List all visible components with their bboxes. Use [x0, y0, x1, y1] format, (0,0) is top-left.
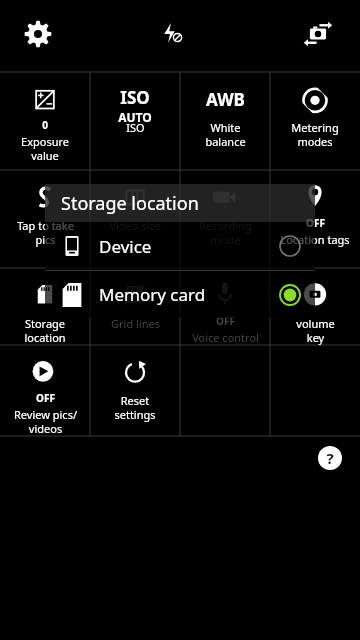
staticText: OFF	[216, 314, 235, 328]
button[interactable]: volume key	[270, 268, 360, 345]
staticText: Voice control	[192, 330, 259, 345]
staticText: ISO	[120, 86, 150, 109]
button[interactable]: Grid lines	[90, 268, 180, 345]
staticText: AUTO	[118, 109, 152, 125]
staticText: Video size	[109, 218, 161, 233]
button[interactable]: Device	[45, 222, 315, 270]
button[interactable]: Reset settings	[90, 345, 180, 436]
button[interactable]: 0	[0, 72, 90, 170]
button[interactable]: Switch camera	[296, 12, 340, 56]
staticText: Tap to take pics	[17, 218, 74, 247]
staticText: White balance	[205, 120, 246, 149]
staticText: OFF	[36, 391, 55, 405]
button[interactable]: Settings	[16, 12, 60, 56]
staticText: 0	[42, 118, 48, 132]
staticText: Reset settings	[114, 393, 156, 422]
staticText: Grid lines	[111, 316, 160, 331]
staticText: Memory card	[99, 283, 206, 306]
button[interactable]: ISO	[90, 72, 180, 170]
staticText: Review pics/ videos	[14, 407, 77, 436]
button[interactable]: OFF	[0, 345, 90, 436]
button[interactable]: Recording mode	[180, 170, 270, 268]
staticText: Storage location	[24, 316, 66, 345]
staticText: OFF	[306, 216, 325, 230]
staticText: Device	[99, 235, 152, 258]
staticText: AWB	[206, 88, 245, 111]
button[interactable]: Memory card	[45, 271, 315, 318]
staticText: Location tags	[280, 232, 350, 247]
button[interactable]: Flash off	[152, 12, 196, 56]
staticText: Storage location	[61, 191, 199, 216]
staticText: Exposure value	[21, 134, 69, 163]
staticText: ISO	[126, 120, 145, 135]
button[interactable]: OFF	[180, 268, 270, 345]
button[interactable]: Storage location	[0, 268, 90, 345]
staticText: Recording mode	[199, 218, 252, 247]
button[interactable]: Video size	[90, 170, 180, 268]
button[interactable]: Metering modes	[270, 72, 360, 170]
button[interactable]: Tap to take pics	[0, 170, 90, 268]
button[interactable]: Help	[308, 436, 352, 480]
staticText: volume key	[296, 316, 335, 345]
staticText: ?	[326, 448, 334, 468]
button[interactable]: White balance	[180, 72, 270, 170]
staticText: Metering modes	[291, 120, 339, 149]
button[interactable]: OFF	[270, 170, 360, 268]
